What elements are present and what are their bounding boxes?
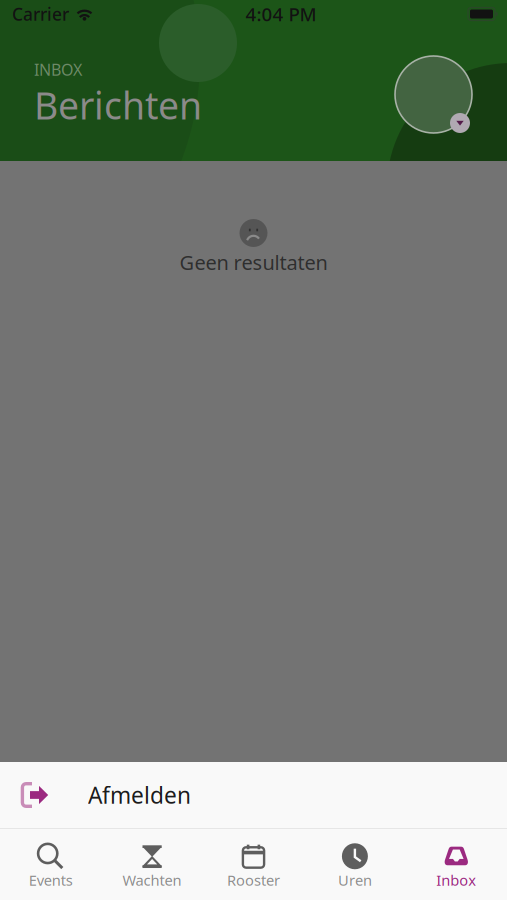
staticText: Berichten xyxy=(34,80,202,130)
button[interactable]: Inbox xyxy=(406,827,507,900)
button[interactable]: Rooster xyxy=(203,827,304,900)
button[interactable]: Account xyxy=(395,56,475,136)
staticText: Wachten xyxy=(123,870,182,890)
staticText: 4:04 PM xyxy=(245,2,316,26)
staticText: INBOX xyxy=(34,59,82,80)
staticText: Afmelden xyxy=(88,780,191,810)
staticText: Rooster xyxy=(227,870,280,890)
button[interactable]: Wachten xyxy=(101,827,203,900)
staticText: Inbox xyxy=(436,870,476,890)
staticText: Uren xyxy=(338,870,372,890)
staticText: Events xyxy=(29,870,73,890)
staticText: Carrier xyxy=(12,2,69,25)
staticText: Geen resultaten xyxy=(179,249,327,276)
button[interactable]: Afmelden xyxy=(0,762,507,828)
button[interactable]: Uren xyxy=(304,827,406,900)
button[interactable]: Events xyxy=(0,827,101,900)
